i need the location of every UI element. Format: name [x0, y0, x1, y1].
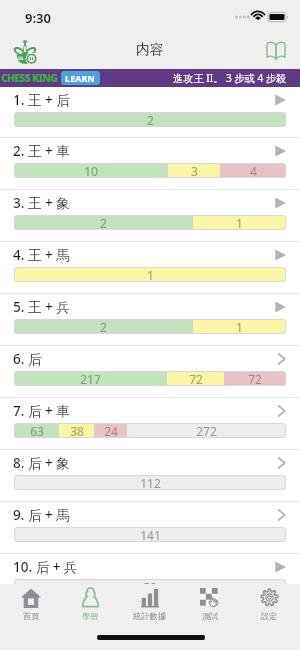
button[interactable]: 統計數據 [121, 587, 179, 621]
staticText: 10 [84, 163, 98, 178]
staticText: 1 [147, 267, 154, 282]
staticText: 4. 王 + 馬 [13, 246, 70, 264]
staticText: 1 [236, 319, 243, 334]
button[interactable]: 8. 后 + 象 [0, 450, 300, 501]
staticText: 112 [140, 475, 161, 490]
button[interactable]: 6. 后 [0, 346, 300, 397]
staticText: 設定 [261, 611, 278, 621]
staticText: 217 [80, 371, 101, 386]
button[interactable]: 3. 王 + 象 [0, 190, 300, 241]
staticText: 7. 后 + 車 [13, 402, 70, 420]
staticText: 學習 [82, 611, 99, 621]
staticText: 8. 后 + 象 [13, 454, 70, 472]
staticText: 10. 后 + 兵 [13, 558, 78, 576]
staticText: 272 [196, 423, 217, 438]
staticText: 3. 王 + 象 [13, 194, 70, 212]
staticText: 2 [100, 319, 107, 334]
staticText: 72 [248, 371, 262, 386]
staticText: 進攻王 II。 3 步或 4 步殺 [173, 71, 287, 85]
button[interactable]: 1. 王 + 后 [0, 87, 300, 137]
staticText: 9:30 [25, 9, 51, 27]
staticText: 統計數據 [133, 611, 167, 621]
staticText: 内容 [136, 41, 164, 59]
button[interactable]: 2. 王 + 車 [0, 138, 300, 189]
staticText: 3 [191, 163, 198, 178]
staticText: LEARN [65, 72, 96, 84]
staticText: 首頁 [23, 611, 40, 621]
button[interactable]: 7. 后 + 車 [0, 398, 300, 449]
staticText: 測試 [202, 611, 219, 621]
staticText: 38 [70, 423, 84, 438]
staticText: 2. 王 + 車 [13, 142, 70, 160]
button[interactable]: 5. 王 + 兵 [0, 294, 300, 345]
button[interactable]: 10. 后 + 兵 [0, 554, 300, 605]
button[interactable]: 測試 [181, 587, 239, 621]
staticText: 50 [143, 579, 157, 594]
button[interactable]: Open book [259, 33, 293, 67]
staticText: 63 [30, 423, 44, 438]
button[interactable]: Chess King home [7, 36, 43, 68]
button[interactable]: 4. 王 + 馬 [0, 242, 300, 293]
button[interactable]: 9. 后 + 馬 [0, 502, 300, 553]
staticText: 141 [140, 527, 161, 542]
staticText: 4 [250, 163, 257, 178]
staticText: 9. 后 + 馬 [13, 506, 70, 524]
staticText: 1. 王 + 后 [13, 91, 70, 109]
button[interactable]: 設定 [240, 587, 298, 621]
staticText: CHESS KING [1, 71, 58, 85]
staticText: 1 [236, 215, 243, 230]
staticText: 6. 后 [13, 350, 42, 368]
button[interactable]: 學習 [61, 587, 119, 621]
button[interactable]: 首頁 [2, 587, 60, 621]
staticText: 2 [147, 112, 154, 127]
staticText: 5. 王 + 兵 [13, 298, 70, 316]
staticText: 72 [189, 371, 203, 386]
staticText: 24 [104, 423, 118, 438]
staticText: 2 [100, 215, 107, 230]
